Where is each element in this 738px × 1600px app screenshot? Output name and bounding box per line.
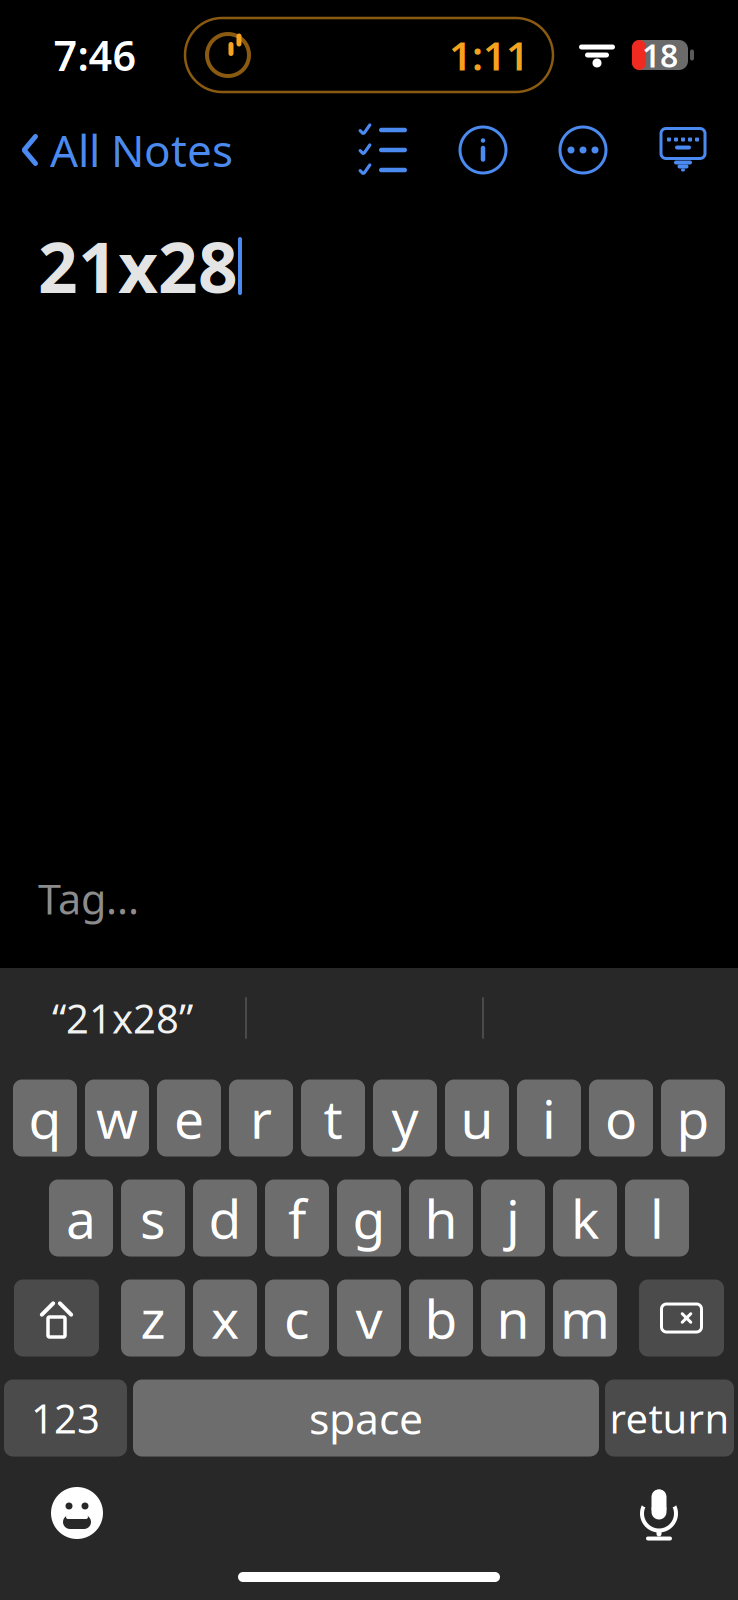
staticText: k bbox=[571, 1183, 599, 1253]
staticText: o bbox=[605, 1083, 637, 1153]
button[interactable]: c bbox=[265, 1279, 329, 1356]
staticText: 18 bbox=[642, 34, 678, 76]
button[interactable]: k bbox=[553, 1179, 617, 1256]
staticText: “21x28” bbox=[52, 991, 193, 1044]
button[interactable]: Delete bbox=[639, 1279, 724, 1356]
button[interactable]: l bbox=[625, 1179, 689, 1256]
button[interactable]: x bbox=[193, 1279, 257, 1356]
button[interactable]: t bbox=[301, 1079, 365, 1156]
button[interactable]: b bbox=[409, 1279, 473, 1356]
staticText: u bbox=[460, 1083, 493, 1153]
staticText: r bbox=[250, 1083, 272, 1153]
staticText: p bbox=[676, 1083, 709, 1153]
staticText: a bbox=[66, 1183, 96, 1253]
staticText: j bbox=[506, 1183, 520, 1253]
button[interactable]: Dictation bbox=[630, 1484, 688, 1542]
staticText: i bbox=[542, 1083, 556, 1153]
button[interactable]: Checklist bbox=[354, 121, 412, 179]
button[interactable]: d bbox=[193, 1179, 257, 1256]
button[interactable]: r bbox=[229, 1079, 293, 1156]
button[interactable]: g bbox=[337, 1179, 401, 1256]
staticText: e bbox=[174, 1083, 204, 1153]
staticText: c bbox=[284, 1283, 310, 1353]
staticText: z bbox=[140, 1283, 165, 1353]
button[interactable]: More bbox=[554, 121, 612, 179]
staticText: w bbox=[96, 1083, 138, 1153]
staticText: 1:11 bbox=[449, 28, 529, 81]
staticText: All Notes bbox=[50, 121, 233, 179]
staticText: b bbox=[424, 1283, 457, 1353]
staticText: v bbox=[355, 1283, 382, 1353]
button[interactable]: o bbox=[589, 1079, 653, 1156]
staticText: return bbox=[609, 1391, 729, 1444]
staticText: d bbox=[208, 1183, 241, 1253]
staticText: t bbox=[323, 1083, 342, 1153]
staticText: f bbox=[288, 1183, 306, 1253]
staticText: 21x28 bbox=[38, 220, 238, 312]
button[interactable]: m bbox=[553, 1279, 617, 1356]
button[interactable]: s bbox=[121, 1179, 185, 1256]
staticText: n bbox=[496, 1283, 529, 1353]
staticText: 7:46 bbox=[53, 28, 136, 82]
button[interactable]: y bbox=[373, 1079, 437, 1156]
button[interactable]: p bbox=[661, 1079, 725, 1156]
button[interactable]: h bbox=[409, 1179, 473, 1256]
staticText: h bbox=[424, 1183, 457, 1253]
button[interactable]: Note Info bbox=[454, 121, 512, 179]
staticText: 123 bbox=[31, 1391, 100, 1444]
button[interactable]: f bbox=[265, 1179, 329, 1256]
button[interactable]: n bbox=[481, 1279, 545, 1356]
button[interactable]: e bbox=[157, 1079, 221, 1156]
staticText: m bbox=[560, 1283, 610, 1353]
staticText: space bbox=[309, 1390, 423, 1446]
button[interactable]: w bbox=[85, 1079, 149, 1156]
staticText: s bbox=[140, 1183, 166, 1253]
button[interactable]: j bbox=[481, 1179, 545, 1256]
button[interactable]: u bbox=[445, 1079, 509, 1156]
button[interactable]: space bbox=[133, 1379, 599, 1456]
button[interactable]: “21x28” bbox=[0, 979, 245, 1057]
staticText: l bbox=[650, 1183, 664, 1253]
button[interactable]: Shift bbox=[14, 1279, 99, 1356]
button[interactable]: i bbox=[517, 1079, 581, 1156]
button[interactable]: a bbox=[49, 1179, 113, 1256]
button[interactable]: v bbox=[337, 1279, 401, 1356]
button[interactable]: Hide Keyboard bbox=[654, 121, 712, 179]
staticText: y bbox=[391, 1083, 418, 1153]
staticText: g bbox=[352, 1183, 385, 1253]
staticText: q bbox=[28, 1083, 61, 1153]
button[interactable]: 123 bbox=[4, 1379, 127, 1456]
button[interactable]: return bbox=[605, 1379, 734, 1456]
staticText: Tag... bbox=[38, 871, 139, 926]
button[interactable]: Emoji bbox=[48, 1484, 106, 1542]
button[interactable]: z bbox=[121, 1279, 185, 1356]
staticText: x bbox=[211, 1283, 239, 1353]
button[interactable]: q bbox=[13, 1079, 77, 1156]
button[interactable]: All Notes bbox=[0, 119, 253, 181]
